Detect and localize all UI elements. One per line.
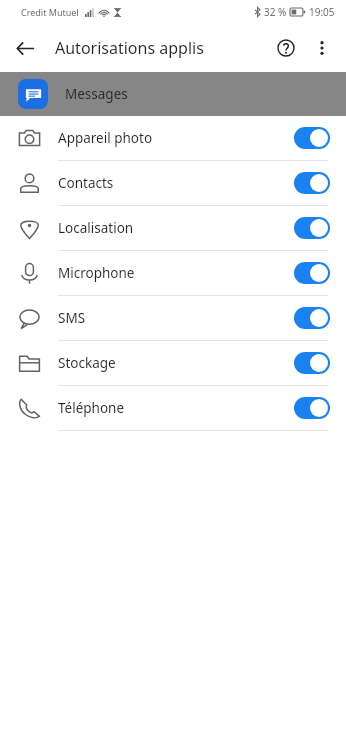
staticText: 19:05 — [309, 5, 335, 19]
button[interactable]: Messages — [0, 72, 346, 116]
button[interactable]: SMS — [294, 307, 330, 329]
button[interactable]: Téléphone — [0, 386, 346, 430]
staticText: Messages — [65, 85, 128, 103]
staticText: Localisation — [58, 219, 134, 237]
button[interactable]: Appareil photo — [294, 127, 330, 149]
button[interactable]: SMS — [0, 296, 346, 340]
button[interactable]: Localisation — [294, 217, 330, 239]
button[interactable]: Téléphone — [294, 397, 330, 419]
button[interactable]: Retour — [8, 31, 42, 65]
button[interactable]: Microphone — [0, 251, 346, 295]
button[interactable]: Contacts — [0, 161, 346, 205]
button[interactable]: Plus d'options — [304, 30, 340, 66]
button[interactable]: Stockage — [0, 341, 346, 385]
button[interactable]: Localisation — [0, 206, 346, 250]
staticText: Stockage — [58, 354, 116, 372]
staticText: Contacts — [58, 174, 114, 192]
staticText: Appareil photo — [58, 129, 153, 147]
button[interactable]: Microphone — [294, 262, 330, 284]
button[interactable]: Appareil photo — [0, 116, 346, 160]
button[interactable]: Aide — [268, 30, 304, 66]
staticText: Téléphone — [58, 399, 125, 417]
button[interactable]: Stockage — [294, 352, 330, 374]
staticText: Credit Mutuel — [21, 6, 79, 18]
staticText: Microphone — [58, 264, 135, 282]
staticText: Autorisations applis — [55, 37, 204, 59]
staticText: SMS — [58, 309, 86, 327]
staticText: 32 % — [264, 5, 287, 19]
button[interactable]: Contacts — [294, 172, 330, 194]
